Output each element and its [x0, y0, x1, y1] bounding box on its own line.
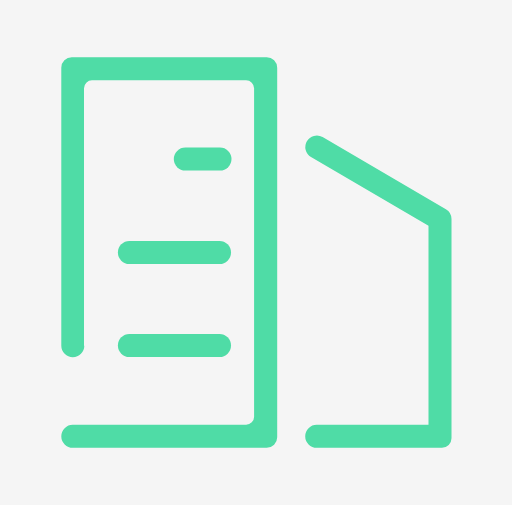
button[interactable]: Documents: [0, 0, 512, 505]
